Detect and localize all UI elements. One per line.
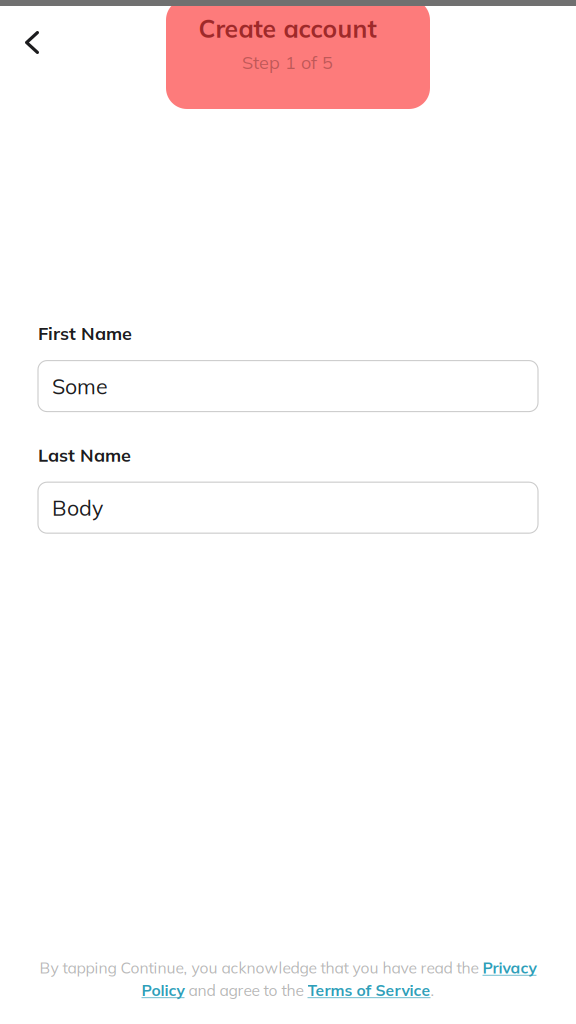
button[interactable]: Privacy xyxy=(482,958,536,977)
staticText: By tapping Continue, you acknowledge tha… xyxy=(39,958,482,977)
staticText: Last Name xyxy=(38,444,131,466)
staticText: First Name xyxy=(38,322,132,345)
staticText: . xyxy=(430,980,434,1000)
staticText: and agree to the xyxy=(184,980,307,1000)
staticText: Body xyxy=(52,494,103,521)
staticText: Some xyxy=(52,373,108,399)
staticText: Privacy xyxy=(482,958,536,977)
button[interactable]: Terms of Service xyxy=(307,980,430,1000)
button[interactable]: Some xyxy=(38,361,538,412)
button[interactable]: Body xyxy=(38,482,538,533)
button[interactable]: Back xyxy=(0,0,57,76)
staticText: Create account xyxy=(198,13,376,44)
staticText: Step 1 of 5 xyxy=(242,51,333,74)
staticText: Terms of Service xyxy=(307,980,430,1000)
button[interactable]: Policy xyxy=(141,980,184,1000)
staticText: Policy xyxy=(141,980,184,1000)
